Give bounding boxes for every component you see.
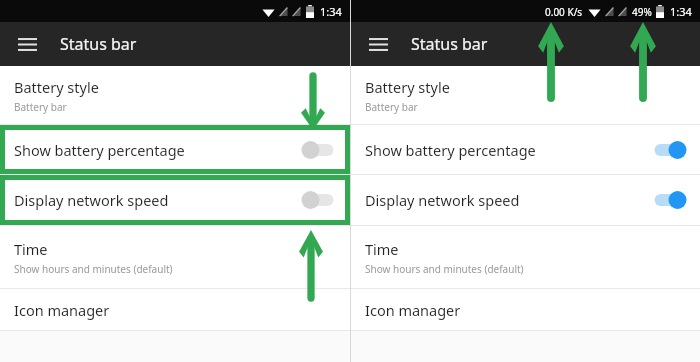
staticText: Icon manager	[14, 300, 110, 320]
button[interactable]: Time	[351, 226, 700, 288]
button[interactable]: Display network speed	[0, 175, 350, 225]
staticText: Battery style	[365, 77, 450, 97]
staticText: Time	[14, 239, 48, 259]
staticText: Display network speed	[14, 190, 304, 210]
staticText: Display network speed	[365, 190, 654, 210]
button[interactable]: Icon manager	[351, 289, 700, 330]
staticText: Battery bar	[365, 100, 418, 114]
staticText: Icon manager	[365, 300, 461, 320]
button[interactable]: Show battery percentage	[351, 125, 700, 174]
staticText: Show hours and minutes (default)	[365, 262, 524, 276]
staticText: 1:34	[670, 4, 692, 19]
button[interactable]: Show battery percentage	[0, 125, 350, 174]
button[interactable]: Open navigation menu	[8, 25, 46, 63]
button[interactable]: Battery style	[0, 66, 350, 124]
button[interactable]: Open navigation menu	[359, 25, 397, 63]
button[interactable]: Display network speed	[351, 175, 700, 225]
staticText: Show battery percentage	[14, 140, 304, 160]
staticText: Show hours and minutes (default)	[14, 262, 173, 276]
staticText: Status bar	[60, 33, 137, 55]
staticText: Battery style	[14, 77, 99, 97]
staticText: Show battery percentage	[365, 140, 654, 160]
staticText: 1:34	[320, 4, 342, 19]
button[interactable]: Battery style	[351, 66, 700, 124]
staticText: Status bar	[411, 33, 488, 55]
staticText: Time	[365, 239, 399, 259]
staticText: 49%	[632, 5, 652, 19]
button[interactable]: Icon manager	[0, 289, 350, 330]
button[interactable]: Time	[0, 226, 350, 288]
staticText: Battery bar	[14, 100, 67, 114]
staticText: 0.00 K/s	[545, 5, 583, 19]
